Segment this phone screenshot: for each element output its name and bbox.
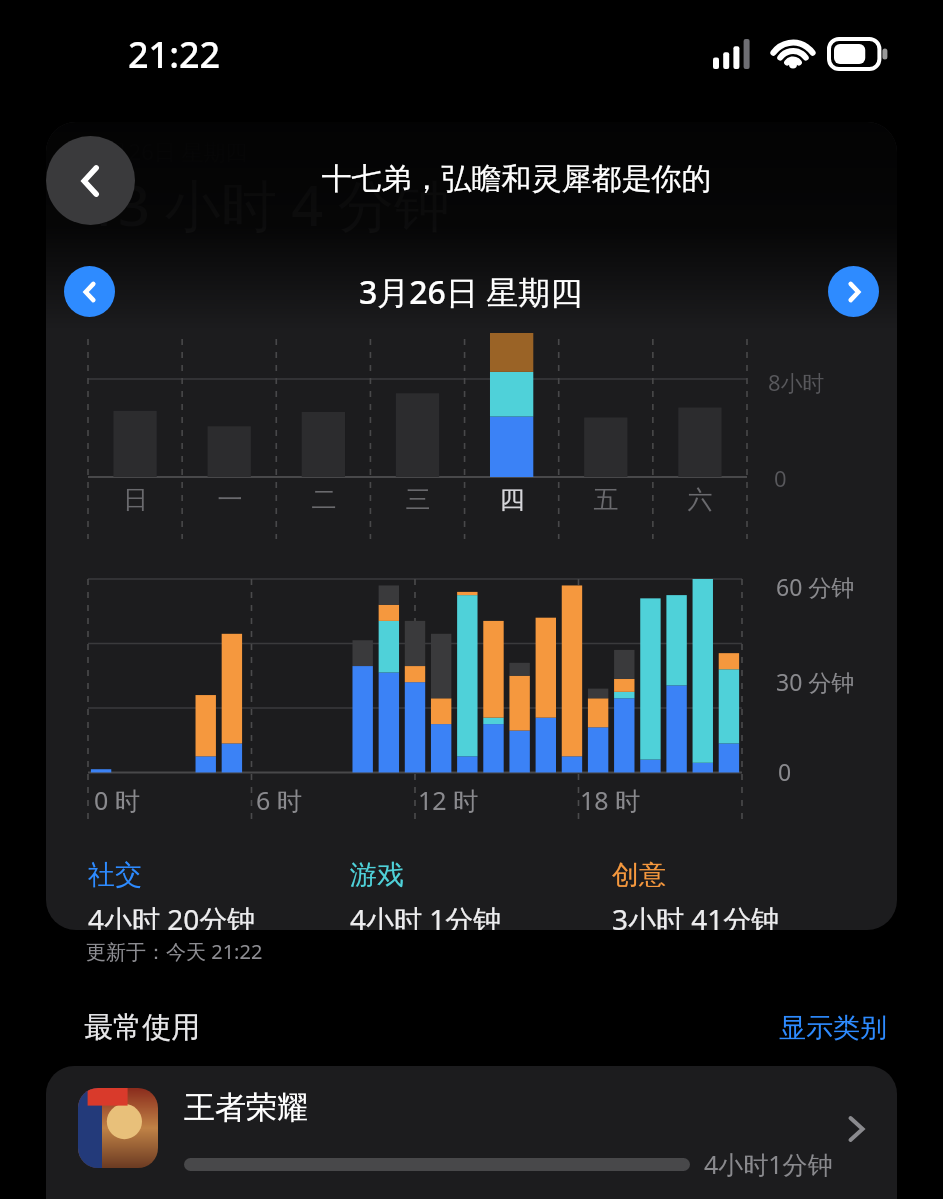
staticText: 3月26日 星期四 <box>94 136 248 166</box>
staticText: 游戏 <box>350 858 404 892</box>
staticText: 二 <box>277 484 371 515</box>
staticText: 4小时 1分钟 <box>350 900 502 930</box>
staticText: 创意 <box>612 858 666 892</box>
button[interactable]: Back <box>46 136 135 225</box>
staticText: 3小时 41分钟 <box>612 900 780 930</box>
staticText: 十七弟，弘瞻和灵犀都是你的 <box>150 160 883 198</box>
button[interactable]: 社交 <box>88 858 350 930</box>
staticText: 显示类别 <box>779 1011 887 1045</box>
staticText: 30 分钟 <box>776 666 855 697</box>
staticText: 一 <box>183 484 277 515</box>
staticText: 3月26日 星期四 <box>359 270 583 314</box>
staticText: 日 <box>88 484 183 515</box>
staticText: 4小时 20分钟 <box>88 900 256 930</box>
staticText: 更新于：今天 21:22 <box>86 938 263 965</box>
staticText: 21:22 <box>128 30 221 79</box>
staticText: 王者荣耀 <box>184 1088 308 1127</box>
staticText: 六 <box>653 484 747 515</box>
staticText: 8小时 <box>768 367 825 397</box>
staticText: 13 小时 4 分钟 <box>86 166 450 242</box>
button[interactable]: 创意 <box>612 858 861 930</box>
staticText: 三 <box>371 484 465 515</box>
staticText: 60 分钟 <box>776 571 855 602</box>
staticText: 0 <box>774 463 787 493</box>
staticText: 18 时 <box>580 783 742 817</box>
staticText: 最常使用 <box>84 1009 200 1046</box>
button[interactable]: 游戏 <box>350 858 612 930</box>
staticText: 四 <box>465 484 559 515</box>
staticText: 4小时1分钟 <box>704 1147 833 1181</box>
button[interactable]: 显示类别 <box>779 1011 887 1045</box>
staticText: 0 <box>778 756 792 787</box>
staticText: 6 时 <box>256 783 418 817</box>
staticText: 五 <box>559 484 653 515</box>
button[interactable]: Previous day <box>64 266 115 317</box>
staticText: 0 时 <box>94 783 256 817</box>
button[interactable]: 王者荣耀 <box>46 1066 897 1199</box>
staticText: 12 时 <box>418 783 580 817</box>
button[interactable]: Next day <box>828 266 879 317</box>
staticText: 社交 <box>88 858 142 892</box>
